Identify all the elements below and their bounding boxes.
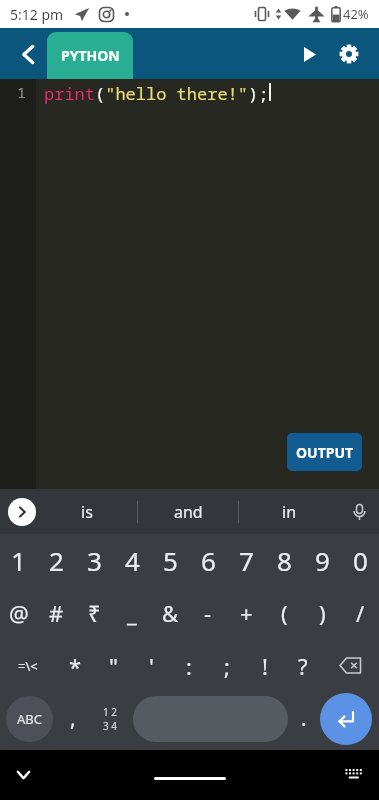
button[interactable]: [294, 39, 324, 69]
button[interactable]: (: [265, 586, 303, 639]
staticText: 5: [163, 543, 178, 578]
button[interactable]: [339, 492, 379, 532]
button[interactable]: !: [246, 639, 284, 692]
staticText: 3 4: [103, 719, 118, 733]
button[interactable]: [8, 34, 48, 74]
staticText: :: [186, 651, 192, 681]
button[interactable]: [322, 639, 379, 692]
button[interactable]: [133, 696, 288, 742]
staticText: 1 2: [103, 705, 118, 719]
staticText: ,: [70, 704, 76, 733]
button[interactable]: &: [151, 586, 189, 639]
staticText: ;: [224, 651, 230, 681]
button[interactable]: 0: [341, 534, 379, 586]
staticText: ': [149, 651, 154, 681]
staticText: ABC: [17, 710, 42, 728]
staticText: 42%: [343, 5, 369, 23]
button[interactable]: *: [56, 639, 94, 692]
button[interactable]: 5: [151, 534, 189, 586]
staticText: -: [204, 598, 212, 628]
button[interactable]: :: [170, 639, 208, 692]
staticText: PYTHON: [61, 46, 120, 65]
button[interactable]: [8, 760, 38, 790]
staticText: 1: [17, 82, 27, 102]
button[interactable]: 6: [189, 534, 227, 586]
staticText: 3: [87, 543, 102, 578]
button[interactable]: [332, 37, 366, 71]
staticText: !: [262, 651, 268, 681]
button[interactable]: _: [113, 586, 151, 639]
staticText: &: [162, 598, 179, 628]
staticText: /: [356, 598, 365, 628]
button[interactable]: +: [227, 586, 265, 639]
button[interactable]: in: [239, 489, 339, 534]
staticText: 0: [353, 543, 368, 578]
staticText: .: [301, 704, 307, 733]
button[interactable]: [339, 760, 369, 790]
staticText: 9: [315, 543, 330, 578]
button[interactable]: ABC: [6, 696, 53, 742]
staticText: 5:12 pm: [10, 5, 64, 24]
staticText: ": [109, 651, 118, 681]
button[interactable]: ,: [53, 692, 93, 745]
button[interactable]: @: [0, 586, 37, 639]
staticText: @: [9, 598, 29, 628]
button[interactable]: [320, 693, 372, 745]
staticText: 4: [125, 543, 140, 578]
staticText: 7: [239, 543, 254, 578]
staticText: 1: [11, 543, 26, 578]
staticText: OUTPUT: [296, 443, 354, 462]
staticText: in: [282, 501, 297, 523]
button[interactable]: .: [288, 692, 320, 745]
button[interactable]: OUTPUT: [287, 433, 362, 471]
staticText: (: [281, 598, 288, 628]
button[interactable]: 7: [227, 534, 265, 586]
button[interactable]: 9: [303, 534, 341, 586]
button[interactable]: ?: [284, 639, 322, 692]
staticText: ?: [298, 651, 308, 681]
button[interactable]: PYTHON: [47, 32, 133, 79]
button[interactable]: /: [341, 586, 379, 639]
button[interactable]: 3: [75, 534, 113, 586]
button[interactable]: 2: [37, 534, 75, 586]
button[interactable]: [8, 498, 36, 526]
button[interactable]: 1: [0, 534, 37, 586]
button[interactable]: 4: [113, 534, 151, 586]
button[interactable]: -: [189, 586, 227, 639]
staticText: _: [127, 598, 137, 628]
staticText: 6: [201, 543, 216, 578]
button[interactable]: ₹: [75, 586, 113, 639]
staticText: #: [49, 598, 64, 628]
button[interactable]: 8: [265, 534, 303, 586]
staticText: and: [174, 501, 203, 523]
button[interactable]: 1 2: [93, 692, 127, 745]
staticText: =\<: [18, 657, 38, 675]
button[interactable]: ): [303, 586, 341, 639]
staticText: print("hello there!");: [44, 82, 269, 105]
staticText: is: [81, 501, 93, 523]
button[interactable]: is: [36, 489, 137, 534]
button[interactable]: =\<: [0, 639, 56, 692]
staticText: *: [69, 651, 82, 681]
staticText: 2: [49, 543, 64, 578]
button[interactable]: ': [132, 639, 170, 692]
button[interactable]: and: [138, 489, 238, 534]
button[interactable]: ": [94, 639, 132, 692]
button[interactable]: ;: [208, 639, 246, 692]
button[interactable]: #: [37, 586, 75, 639]
staticText: 8: [277, 543, 292, 578]
staticText: ): [319, 598, 326, 628]
staticText: ₹: [88, 598, 101, 628]
staticText: +: [240, 598, 253, 628]
